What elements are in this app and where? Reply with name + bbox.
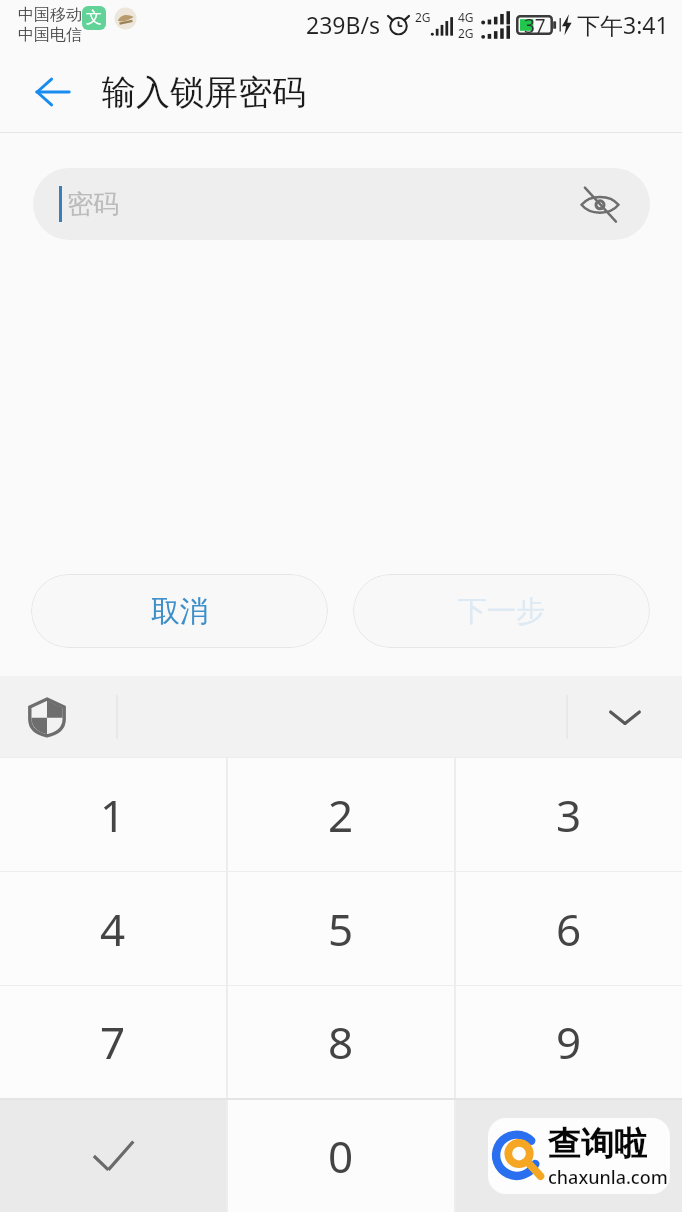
staticText: 3: [556, 785, 582, 845]
staticText: 2G: [458, 25, 474, 39]
staticText: 239B/s: [306, 9, 380, 40]
staticText: 2: [328, 785, 354, 845]
button[interactable]: 删除: [456, 1100, 682, 1212]
staticText: 5: [328, 899, 354, 959]
staticText: 37: [524, 13, 546, 37]
button[interactable]: 安全键盘: [20, 690, 74, 744]
staticText: 取消: [151, 593, 209, 630]
staticText: 8: [328, 1012, 354, 1072]
button[interactable]: 返回: [22, 61, 84, 123]
staticText: 4: [100, 899, 126, 959]
button[interactable]: 9: [456, 986, 682, 1098]
staticText: 下一步: [458, 593, 545, 630]
button[interactable]: 0: [228, 1100, 454, 1212]
staticText: 文: [86, 8, 102, 28]
staticText: 查询啦: [548, 1123, 647, 1165]
staticText: 中国移动: [18, 5, 82, 25]
staticText: 输入锁屏密码: [102, 71, 306, 114]
staticText: 密码: [67, 188, 119, 221]
staticText: 1: [100, 785, 126, 845]
staticText: 9: [556, 1012, 582, 1072]
staticText: 中国电信: [18, 25, 82, 45]
button[interactable]: 密码: [33, 168, 650, 240]
staticText: 7: [100, 1012, 126, 1072]
button[interactable]: 7: [0, 986, 226, 1098]
staticText: 2G: [415, 9, 431, 25]
staticText: 下午3:41: [577, 9, 669, 40]
staticText: 4G: [458, 9, 474, 25]
button[interactable]: 显示密码: [576, 180, 624, 228]
button[interactable]: 确定: [0, 1100, 226, 1212]
button[interactable]: 取消: [31, 574, 328, 648]
staticText: chaxunla.com: [548, 1165, 668, 1190]
button[interactable]: 5: [228, 872, 454, 985]
staticText: 6: [556, 899, 582, 959]
button[interactable]: 收起键盘: [598, 690, 652, 744]
button[interactable]: 8: [228, 986, 454, 1098]
button[interactable]: 4: [0, 872, 226, 985]
button[interactable]: 6: [456, 872, 682, 985]
button[interactable]: 下一步: [353, 574, 650, 648]
button[interactable]: 3: [456, 758, 682, 871]
button[interactable]: 1: [0, 758, 226, 871]
button[interactable]: 2: [228, 758, 454, 871]
staticText: 0: [328, 1126, 354, 1186]
